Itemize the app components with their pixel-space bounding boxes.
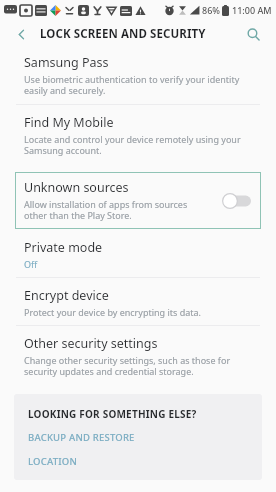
staticText: Samsung Pass [24,54,109,71]
button[interactable]: Other security settings [0,326,276,385]
button[interactable]: Unknown sources toggle [221,193,251,209]
button[interactable]: LOCATION [28,455,250,468]
button[interactable]: Samsung Pass [0,48,276,104]
button[interactable]: Find My Mobile [0,105,276,164]
staticText: 86% [202,4,220,16]
staticText: 11:00 AM [232,4,272,16]
button[interactable]: Encrypt device [0,278,276,325]
staticText: Change other security settings, such as … [24,354,231,378]
button[interactable]: BACKUP AND RESTORE [28,431,250,444]
staticText: Protect your device by encrypting its da… [24,306,201,318]
staticText: Private mode [24,239,103,256]
staticText: LOOKING FOR SOMETHING ELSE? [28,407,197,421]
staticText: Use biometric authentication to verify y… [24,73,240,97]
staticText: Unknown sources [24,179,129,196]
button[interactable]: Private mode [0,239,276,277]
staticText: Other security settings [24,335,158,352]
button[interactable]: Back [10,23,32,45]
staticText: Off [24,258,38,270]
button[interactable]: Unknown sources [15,172,261,229]
staticText: LOCATION [28,455,78,468]
staticText: Find My Mobile [24,114,114,131]
staticText: Allow installation of apps from sources … [24,198,188,222]
staticText: Encrypt device [24,287,109,304]
button[interactable]: Search [242,23,264,45]
staticText: BACKUP AND RESTORE [28,431,135,444]
staticText: LOCK SCREEN AND SECURITY [40,26,242,42]
staticText: Locate and control your device remotely … [24,133,241,157]
